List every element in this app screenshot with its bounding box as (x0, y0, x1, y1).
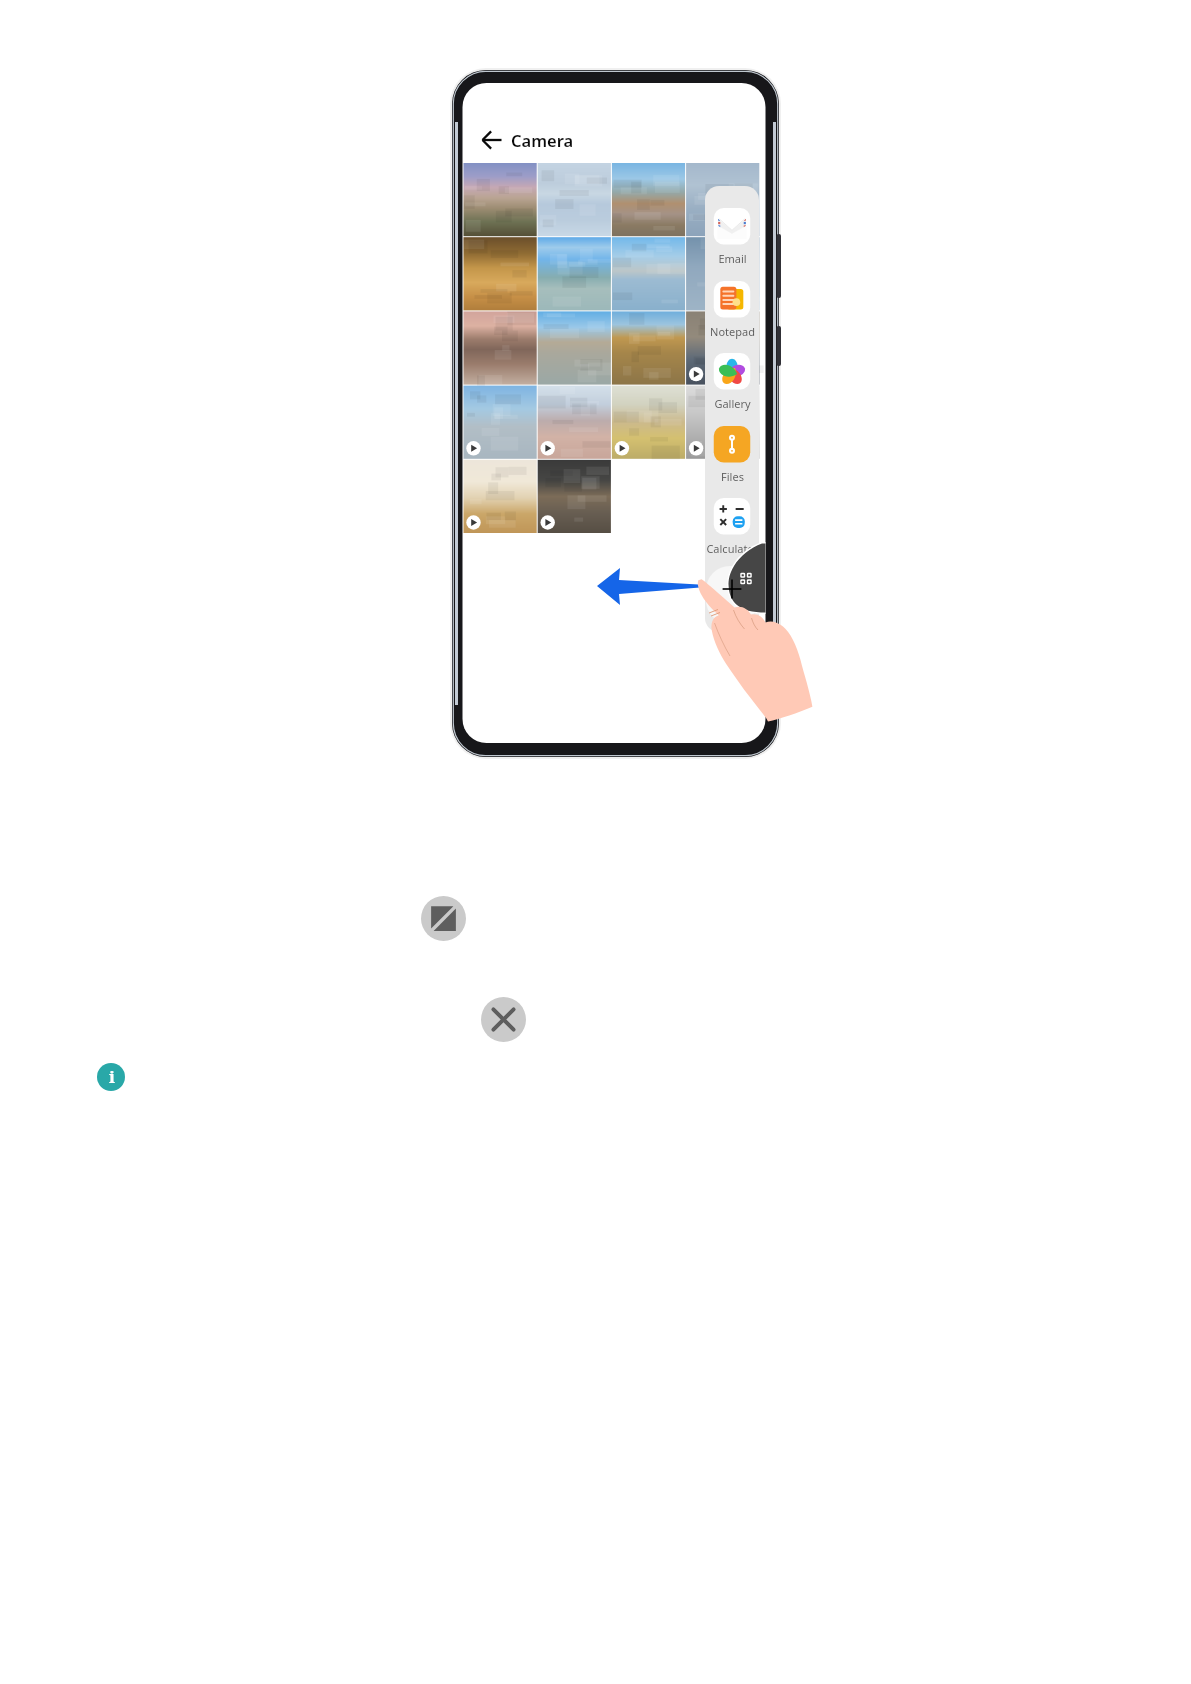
button[interactable]: Camera (511, 126, 581, 154)
button[interactable]: Resize window (421, 896, 466, 941)
button[interactable]: Info (97, 1063, 125, 1091)
staticText: Camera (511, 129, 574, 151)
staticText: Gallery (714, 396, 751, 411)
staticText: i (109, 1065, 115, 1088)
staticText: Calculator (706, 541, 759, 556)
button[interactable]: Back (478, 126, 506, 154)
button[interactable]: Gallery (714, 353, 751, 390)
button[interactable]: Calculator (689, 539, 775, 557)
staticText: Notepad (710, 324, 755, 339)
button[interactable]: Calculator (714, 498, 751, 535)
button[interactable]: Close (481, 997, 526, 1042)
button[interactable]: Notepad (689, 322, 775, 340)
staticText: Files (721, 469, 744, 484)
button[interactable]: Files (714, 426, 751, 463)
button[interactable]: Email (689, 249, 775, 267)
button[interactable]: Open app dock (728, 543, 766, 618)
button[interactable]: Notepad (714, 281, 751, 318)
button[interactable]: Email (714, 208, 751, 245)
staticText: Email (718, 251, 747, 266)
button[interactable]: Files (689, 467, 775, 485)
button[interactable]: Gallery (689, 394, 775, 412)
